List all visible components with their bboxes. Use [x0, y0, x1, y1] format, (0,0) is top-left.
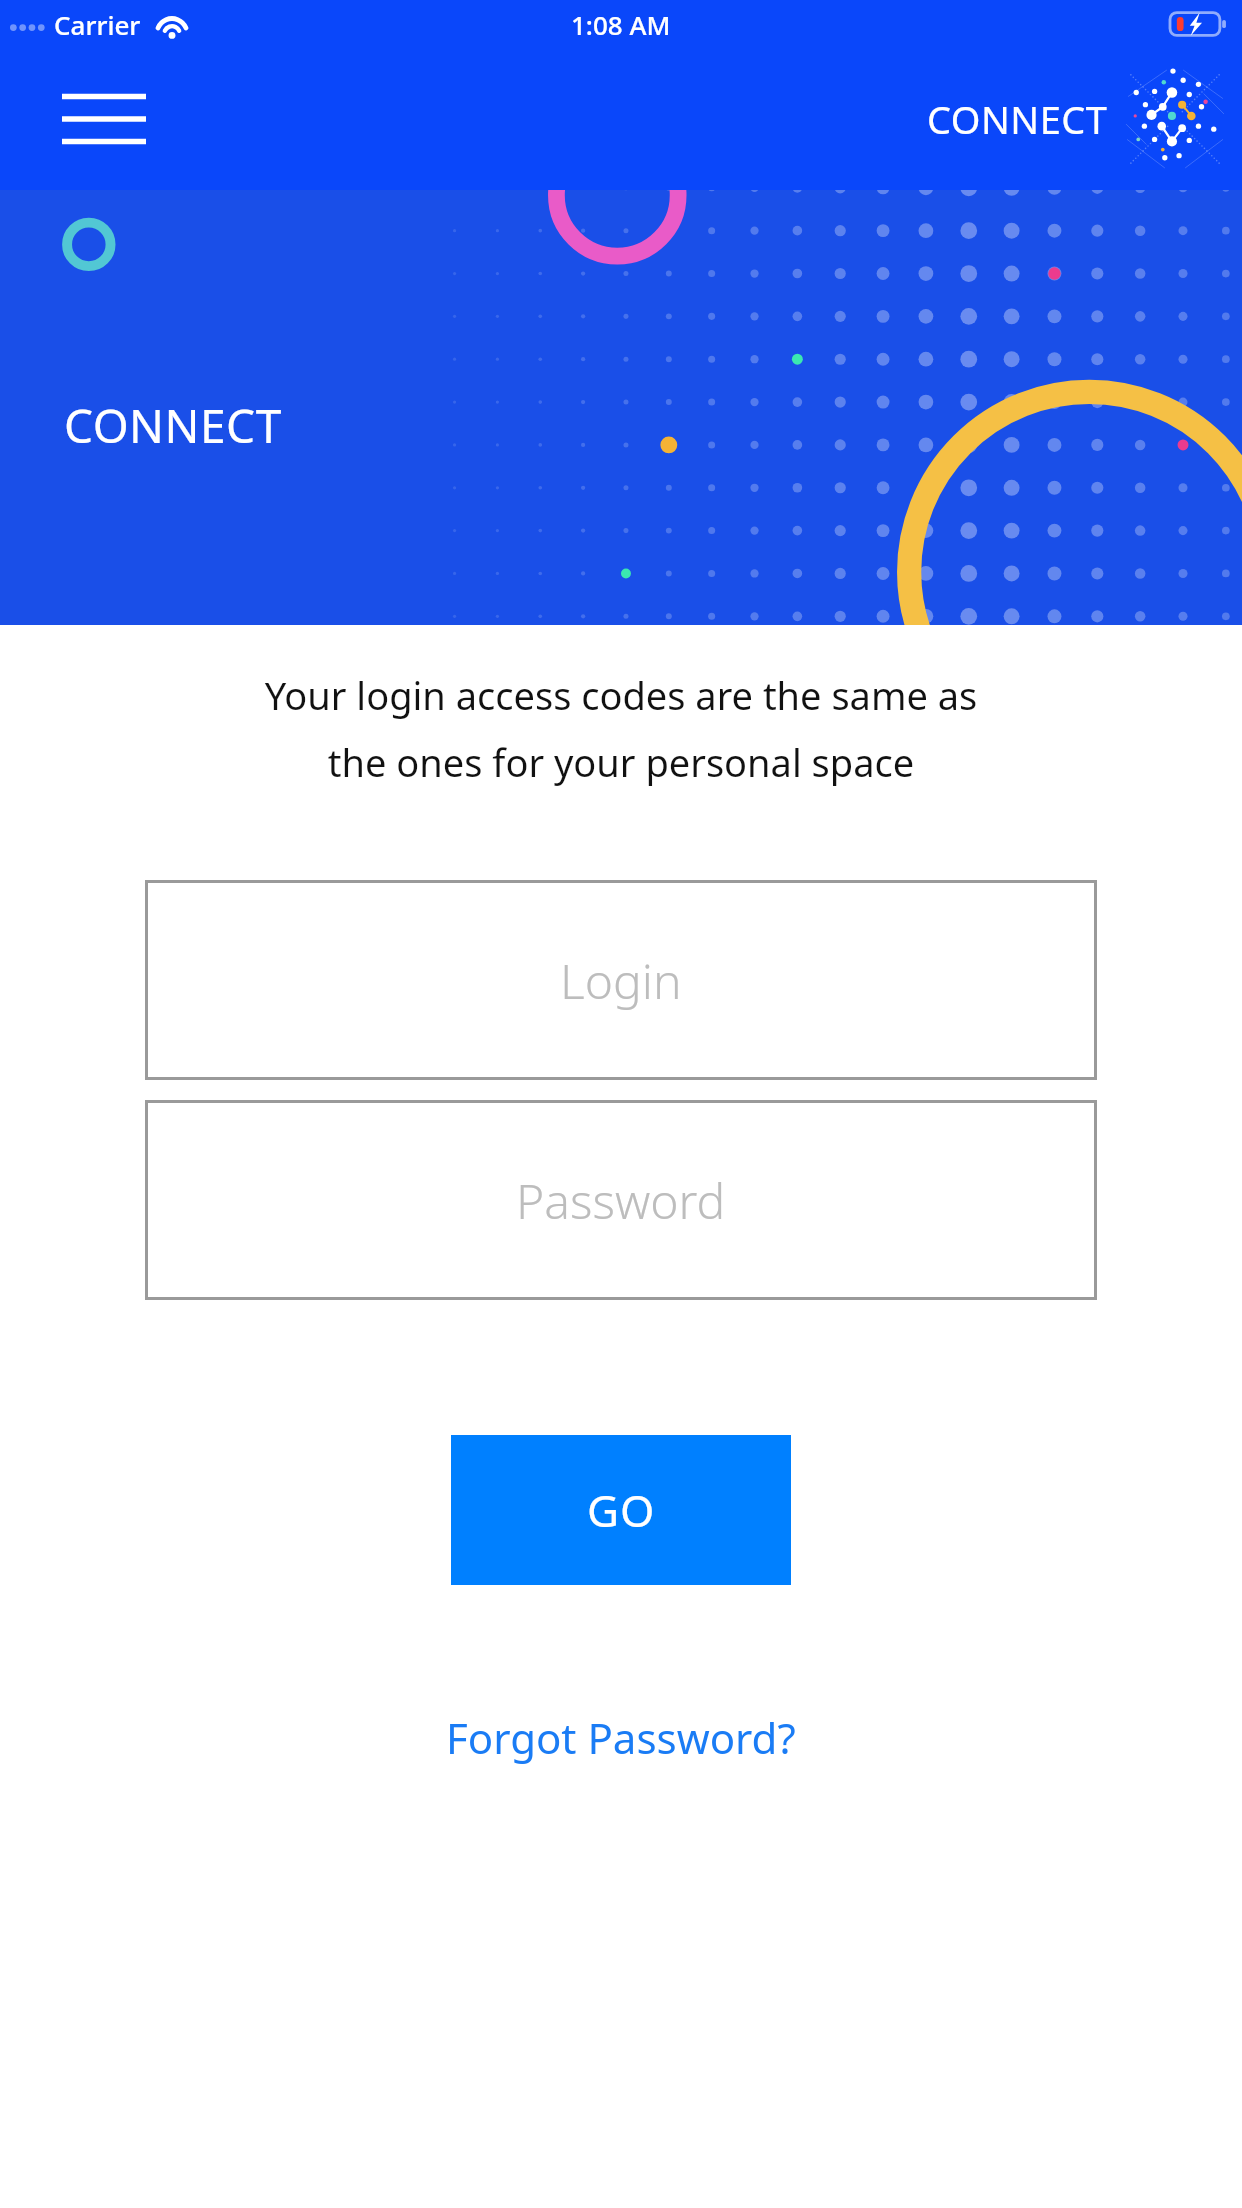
staticText: Your login access codes are the same as … [0, 669, 1242, 788]
staticText: CONNECT [64, 394, 282, 457]
staticText: GO [587, 1480, 656, 1540]
other: Logo [1124, 68, 1226, 170]
button[interactable]: GO [451, 1435, 791, 1585]
button[interactable]: Login [145, 880, 1097, 1080]
staticText: Login [560, 948, 682, 1013]
staticText: 1:08 AM [571, 7, 671, 42]
staticText: Carrier [54, 7, 141, 42]
staticText: Password [516, 1168, 726, 1233]
button[interactable]: Password [145, 1100, 1097, 1300]
button[interactable]: CONNECT [927, 68, 1226, 170]
staticText: Forgot Password? [446, 1709, 796, 1766]
button[interactable]: Forgot Password? [446, 1709, 796, 1766]
button[interactable]: Menu [52, 80, 156, 158]
staticText: CONNECT [927, 93, 1108, 145]
